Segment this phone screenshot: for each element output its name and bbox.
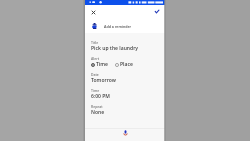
staticText: Repeat [91, 104, 103, 109]
button[interactable]: Repeat [85, 104, 165, 120]
button[interactable]: Save reminder [149, 4, 164, 19]
button[interactable]: Close [86, 5, 101, 20]
staticText: None [91, 109, 105, 116]
staticText: Date [91, 72, 99, 77]
button[interactable]: Title [85, 40, 165, 56]
staticText: Title [91, 40, 99, 45]
staticText: Alert [91, 56, 100, 61]
staticText: Tomorrow [91, 77, 116, 84]
staticText: Add a reminder [104, 24, 132, 29]
staticText: 6:00 PM [91, 93, 110, 100]
staticText: Place [120, 61, 133, 68]
staticText: Time [91, 88, 100, 93]
staticText: Pick up the laundry [91, 45, 139, 52]
button[interactable]: Time [91, 61, 108, 68]
button[interactable]: Date [85, 72, 165, 88]
button[interactable]: Time [85, 88, 165, 104]
staticText: Time [96, 61, 108, 68]
button[interactable]: Voice input [121, 128, 130, 137]
button[interactable]: Add a reminder [85, 19, 165, 33]
button[interactable]: Place [115, 61, 133, 68]
